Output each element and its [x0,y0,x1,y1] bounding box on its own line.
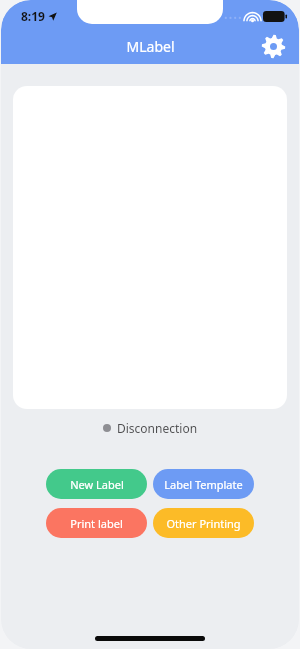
button[interactable]: Print label [46,508,147,538]
button[interactable]: New Label [46,469,147,499]
staticText: New Label [70,477,124,492]
button[interactable]: Settings [258,31,288,61]
staticText: MLabel [126,37,175,56]
staticText: Print label [70,516,123,531]
staticText: Label Template [164,477,243,492]
staticText: Disconnection [117,420,198,436]
staticText: 8:19 [21,8,45,24]
button[interactable]: Other Printing [153,508,254,538]
button[interactable]: Label Template [153,469,254,499]
staticText: Other Printing [166,516,241,531]
